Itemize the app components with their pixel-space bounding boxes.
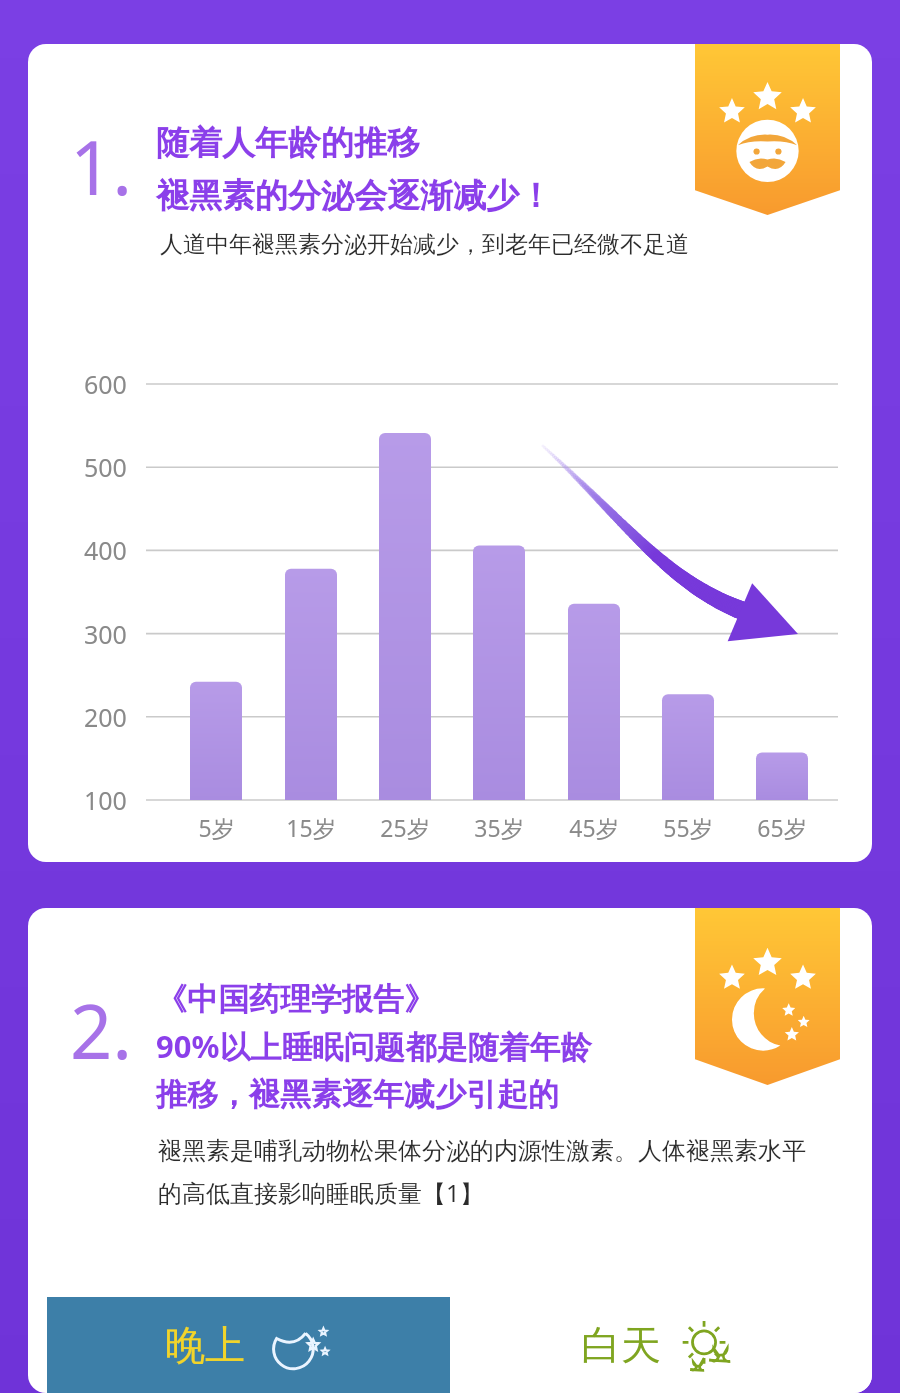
- staticText: 白天: [581, 1320, 661, 1370]
- other: Night badge: [695, 908, 840, 1085]
- staticText: 90%以上睡眠问题都是随着年龄: [156, 1025, 592, 1067]
- staticText: 300: [84, 617, 127, 651]
- staticText: 55岁: [663, 812, 713, 843]
- button[interactable]: 白天: [450, 1297, 872, 1393]
- staticText: 45岁: [569, 812, 619, 843]
- staticText: 晚上: [165, 1320, 245, 1370]
- staticText: 的高低直接影响睡眠质量【1】: [158, 1176, 484, 1209]
- staticText: 推移，褪黑素逐年减少引起的: [156, 1075, 559, 1114]
- staticText: 随着人年龄的推移: [156, 122, 420, 164]
- staticText: 400: [84, 533, 127, 567]
- staticText: 600: [84, 367, 127, 401]
- staticText: 褪黑素是哺乳动物松果体分泌的内源性激素。人体褪黑素水平: [158, 1136, 806, 1166]
- button[interactable]: 晚上: [47, 1297, 450, 1393]
- staticText: 65岁: [757, 812, 807, 843]
- staticText: 25岁: [380, 812, 430, 843]
- staticText: 35岁: [474, 812, 524, 843]
- staticText: 褪黑素的分泌会逐渐减少！: [156, 175, 552, 217]
- other: Day: [675, 1312, 741, 1378]
- staticText: 5岁: [198, 812, 235, 843]
- button[interactable]: Night badge: [28, 908, 872, 1393]
- other: Night: [267, 1312, 333, 1378]
- staticText: 人道中年褪黑素分泌开始减少，到老年已经微不足道: [160, 230, 689, 259]
- staticText: 200: [84, 700, 127, 734]
- button[interactable]: Elderly badge: [28, 44, 872, 862]
- staticText: 2.: [70, 980, 133, 1081]
- staticText: 1.: [70, 116, 133, 217]
- staticText: 500: [84, 450, 127, 484]
- other: Elderly badge: [695, 44, 840, 215]
- staticText: 100: [84, 783, 127, 817]
- staticText: 《中国药理学报告》: [156, 980, 435, 1019]
- staticText: 15岁: [286, 812, 336, 843]
